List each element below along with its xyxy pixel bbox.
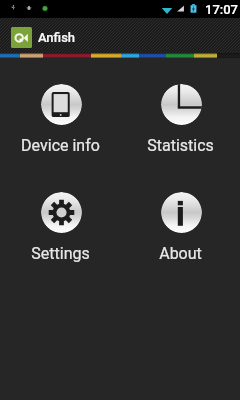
staticText: Device info <box>21 136 100 155</box>
button[interactable]: Settings <box>0 192 120 263</box>
staticText: 17:07 <box>205 2 239 17</box>
button[interactable]: About <box>120 192 240 263</box>
staticText: About <box>159 244 202 263</box>
staticText: Anfish <box>38 30 76 45</box>
staticText: Settings <box>31 244 90 263</box>
button[interactable]: Statistics <box>120 84 240 155</box>
button[interactable]: Device info <box>0 84 120 155</box>
staticText: Statistics <box>147 136 214 155</box>
